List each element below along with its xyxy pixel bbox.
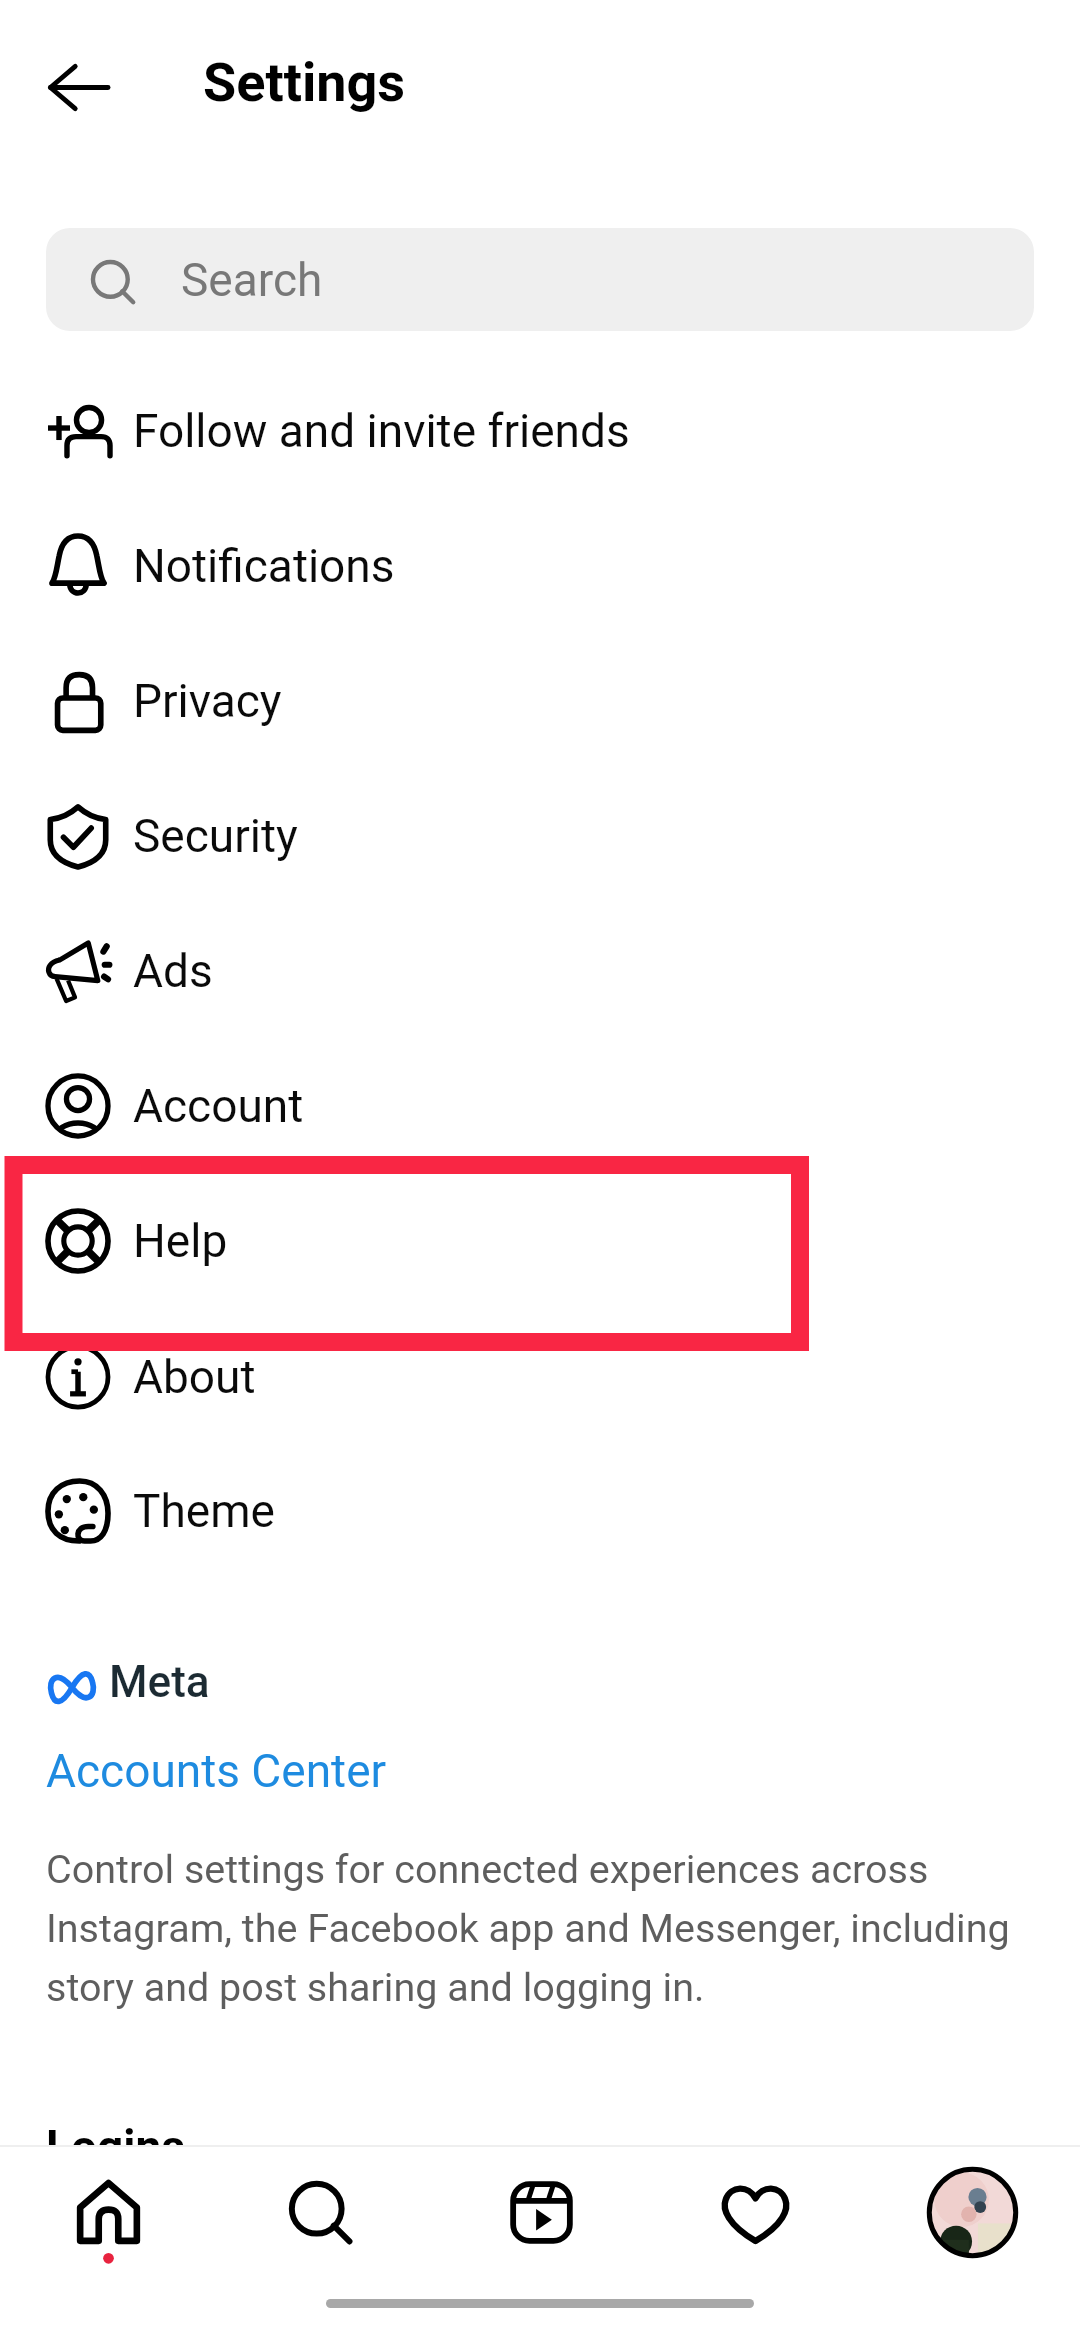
button[interactable]: Notifications [0,500,1080,632]
staticText: Theme [133,1484,275,1538]
button[interactable]: Profile [892,2150,1052,2285]
staticText: Settings [203,51,406,114]
button[interactable]: Theme [0,1445,1080,1577]
button[interactable]: Security [0,770,1080,902]
staticText: About [133,1350,256,1404]
button[interactable]: Reels [461,2150,621,2285]
button[interactable]: Search [46,228,1034,331]
staticText: Account [133,1079,304,1133]
button[interactable]: Search [240,2150,400,2285]
staticText: Logins [46,2120,185,2174]
staticText: Follow and invite friends [133,404,630,458]
staticText: Security [133,809,298,863]
button[interactable]: Follow and invite friends [0,365,1080,497]
staticText: Control settings for connected experienc… [46,1846,1031,2011]
staticText: Search [181,253,323,307]
staticText: Ads [133,944,213,998]
staticText: Accounts Center [46,1744,387,1798]
button[interactable]: Home [28,2150,188,2285]
button[interactable]: Back [28,42,130,132]
button[interactable]: Privacy [0,635,1080,767]
button[interactable]: Account [0,1040,1080,1172]
button[interactable]: Ads [0,905,1080,1037]
staticText: Privacy [133,674,282,728]
button[interactable]: Accounts Center [46,1744,387,1798]
staticText: Notifications [133,539,395,593]
button[interactable]: Help [0,1175,1080,1307]
staticText: Help [133,1214,228,1268]
staticText: Meta [109,1656,210,1708]
button[interactable]: Activity [675,2150,835,2285]
button[interactable]: About [0,1311,1080,1443]
